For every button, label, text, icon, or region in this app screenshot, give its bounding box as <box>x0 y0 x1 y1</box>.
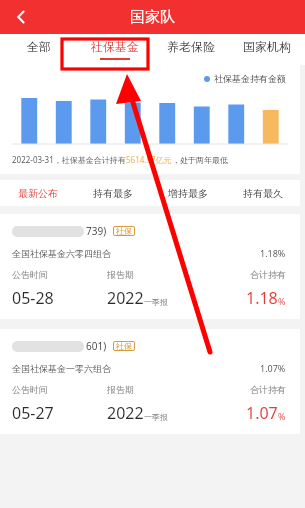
staticText: 1.07% <box>260 362 286 374</box>
staticText: 1.07 <box>246 402 278 424</box>
staticText: 国家队 <box>130 8 175 27</box>
button[interactable]: 739) <box>0 214 300 319</box>
button[interactable]: 最新公布 <box>0 180 75 206</box>
staticText: ，处于两年最低 <box>172 155 228 165</box>
staticText: 2022 <box>107 402 144 424</box>
staticText: 社保基金持有金额 <box>214 73 286 84</box>
staticText: 1.18 <box>246 287 278 309</box>
button[interactable]: 持有最久 <box>225 180 300 206</box>
staticText: 公告时间 <box>12 269 107 280</box>
staticText: 05-28 <box>12 287 107 309</box>
staticText: 社保 <box>116 341 132 351</box>
staticText: 社保基金 <box>91 39 139 54</box>
button[interactable]: 增持最多 <box>150 180 225 206</box>
staticText: 全国社保基金六零四组合 <box>12 248 260 259</box>
staticText: 报告期 <box>107 269 201 280</box>
staticText: 合计持有 <box>250 269 286 280</box>
button[interactable]: 养老保险 <box>153 34 229 65</box>
button[interactable]: 社保基金 <box>77 34 153 65</box>
staticText: 05-27 <box>12 402 107 424</box>
staticText: % <box>278 410 286 422</box>
staticText: 全部 <box>27 39 51 54</box>
staticText: 一季报 <box>144 412 168 422</box>
staticText: 社保 <box>116 226 132 236</box>
staticText: % <box>278 295 286 307</box>
staticText: 601) <box>86 339 107 353</box>
button[interactable]: 全部 <box>0 34 77 65</box>
staticText: 5614.97亿元 <box>126 154 172 165</box>
staticText: 持有最多 <box>93 187 133 200</box>
staticText: 报告期 <box>107 384 201 395</box>
button[interactable]: 601) <box>0 329 300 434</box>
button[interactable]: 持有最多 <box>75 180 150 206</box>
button[interactable]: 国家机构 <box>229 34 305 65</box>
staticText: 养老保险 <box>167 39 215 54</box>
staticText: 国家机构 <box>243 39 291 54</box>
staticText: 合计持有 <box>250 384 286 395</box>
staticText: 一季报 <box>144 297 168 307</box>
staticText: 最新公布 <box>18 187 58 200</box>
staticText: 全国社保基金一零六组合 <box>12 363 260 374</box>
staticText: 739) <box>86 224 107 238</box>
staticText: 1.18% <box>260 247 286 259</box>
staticText: 公告时间 <box>12 384 107 395</box>
button[interactable]: Back <box>6 2 36 32</box>
staticText: 2022-03-31，社保基金合计持有 <box>12 154 126 165</box>
staticText: 增持最多 <box>168 187 208 200</box>
staticText: 持有最久 <box>243 187 283 200</box>
staticText: 2022 <box>107 287 144 309</box>
